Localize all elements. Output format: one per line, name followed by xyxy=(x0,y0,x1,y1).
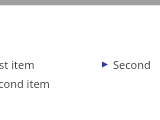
button[interactable]: Second xyxy=(102,57,160,72)
staticText: Second xyxy=(113,57,151,72)
staticText: Second item xyxy=(0,76,50,91)
button[interactable]: First item xyxy=(0,57,76,91)
staticText: First item xyxy=(0,57,35,72)
